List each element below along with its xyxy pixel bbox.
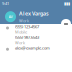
staticText: Work <box>15 40 25 45</box>
staticText: Mobile <box>15 29 27 35</box>
staticText: (555) 123-4567 <box>15 24 39 29</box>
staticText: ▮▮▮ <box>64 1 70 6</box>
staticText: Work <box>19 18 29 23</box>
button[interactable]: Edit <box>61 19 71 29</box>
staticText: AV <box>8 14 12 19</box>
staticText: (555) 987-6543 <box>15 35 39 40</box>
staticText: Alex Vargas <box>19 10 49 17</box>
staticText: 9:41 <box>2 1 9 6</box>
staticText: alex@example.com <box>15 45 50 50</box>
